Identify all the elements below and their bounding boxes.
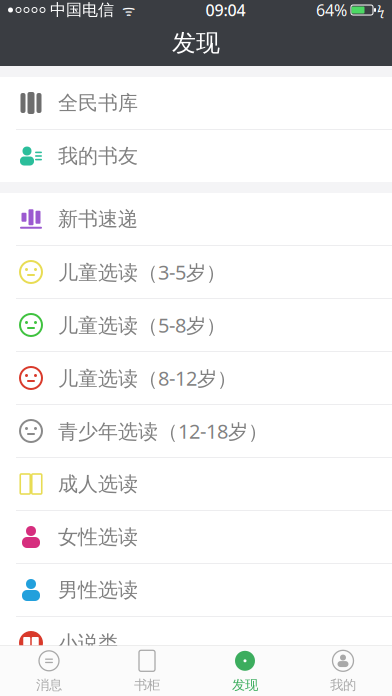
staticText: ϟ [377, 1, 384, 19]
button[interactable]: 我的 [294, 646, 392, 696]
staticText: 09:04 [205, 0, 245, 21]
staticText: ᯤ [114, 0, 135, 20]
staticText: 全民书库 [58, 91, 138, 115]
staticText: 新书速递 [58, 207, 138, 231]
staticText: 我的 [330, 677, 356, 693]
staticText: 书柜 [134, 677, 160, 693]
staticText: 中国电信 [45, 0, 114, 20]
button[interactable]: 书柜 [98, 646, 196, 696]
button[interactable]: 儿童选读（8-12岁） [0, 352, 392, 405]
button[interactable]: 发现 [196, 646, 294, 696]
button[interactable]: 成人选读 [0, 458, 392, 511]
staticText: 小说类 [58, 631, 118, 655]
staticText: 儿童选读（8-12岁） [58, 365, 237, 391]
staticText: 男性选读 [58, 578, 138, 602]
staticText: 发现 [172, 28, 220, 58]
button[interactable]: 儿童选读（3-5岁） [0, 246, 392, 299]
staticText: 消息 [36, 677, 62, 693]
staticText: 我的书友 [58, 144, 138, 168]
button[interactable]: 儿童选读（5-8岁） [0, 299, 392, 352]
staticText: 儿童选读（3-5岁） [58, 259, 226, 285]
button[interactable]: 我的书友 [0, 130, 392, 182]
button[interactable]: 消息 [0, 646, 98, 696]
staticText: 成人选读 [58, 472, 138, 496]
button[interactable]: 全民书库 [0, 77, 392, 130]
staticText: 青少年选读（12-18岁） [58, 418, 268, 444]
staticText: 女性选读 [58, 525, 138, 549]
button[interactable]: 男性选读 [0, 564, 392, 617]
staticText: 儿童选读（5-8岁） [58, 312, 226, 338]
staticText: 64% [316, 0, 347, 21]
button[interactable]: 青少年选读（12-18岁） [0, 405, 392, 458]
staticText: 发现 [232, 677, 258, 693]
button[interactable]: 小说类 [0, 617, 392, 670]
button[interactable]: 新书速递 [0, 193, 392, 246]
button[interactable]: 女性选读 [0, 511, 392, 564]
